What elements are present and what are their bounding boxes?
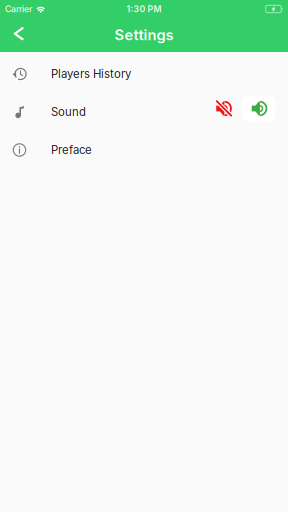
button[interactable]: Sound: [0, 93, 206, 131]
button[interactable]: Players History: [0, 55, 288, 93]
button[interactable]: Preface: [0, 131, 288, 169]
staticText: Sound: [51, 105, 86, 119]
button[interactable]: Sound on: [242, 96, 275, 121]
staticText: Players History: [51, 67, 131, 81]
staticText: Carrier: [5, 4, 32, 14]
staticText: Settings: [114, 26, 173, 44]
button[interactable]: Mute sound: [206, 96, 240, 121]
button[interactable]: Back: [0, 18, 44, 52]
staticText: 1:30 PM: [126, 4, 161, 14]
staticText: Preface: [51, 143, 92, 157]
